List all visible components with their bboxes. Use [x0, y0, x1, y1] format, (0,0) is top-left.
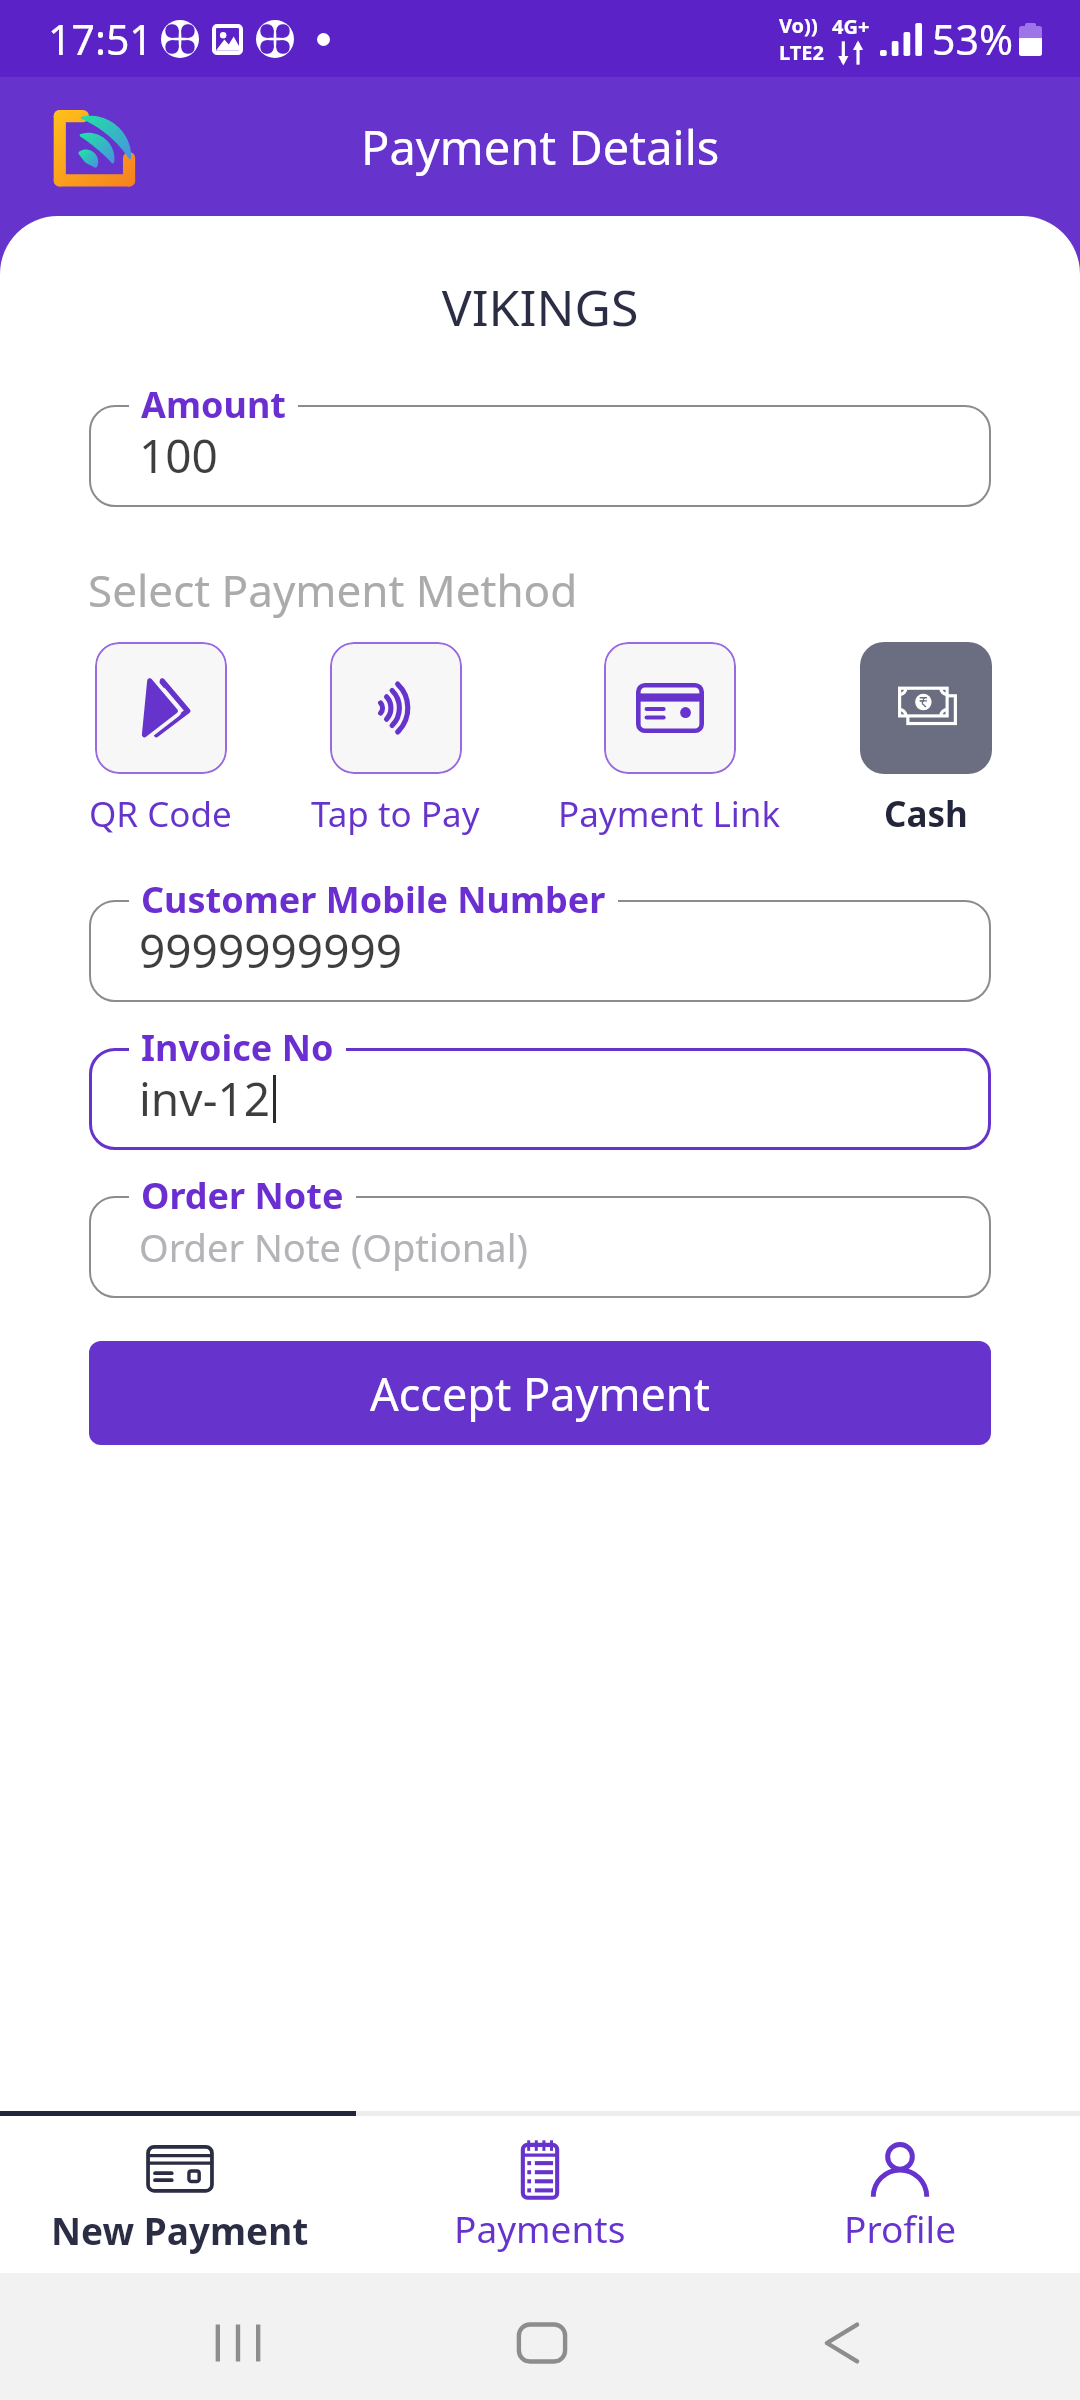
- staticText: Select Payment Method: [88, 560, 578, 620]
- other: App logo: [52, 105, 136, 189]
- staticText: 4G+: [832, 13, 870, 40]
- staticText: 53%: [932, 11, 1013, 67]
- staticText: Invoice No: [141, 1023, 334, 1072]
- button[interactable]: [89, 1196, 991, 1298]
- staticText: 100: [139, 424, 218, 487]
- staticText: Tap to Pay: [311, 790, 480, 838]
- staticText: Profile: [844, 2203, 956, 2253]
- staticText: Cash: [884, 790, 968, 838]
- staticText: inv-12: [139, 1067, 271, 1130]
- staticText: Customer Mobile Number: [141, 875, 606, 924]
- staticText: Amount: [141, 380, 286, 429]
- button[interactable]: Tap to Pay: [311, 642, 480, 838]
- button[interactable]: Back: [800, 2301, 884, 2385]
- staticText: LTE2: [779, 39, 824, 66]
- staticText: 17:51: [48, 11, 153, 67]
- staticText: Vo)): [779, 12, 818, 39]
- button[interactable]: [89, 405, 991, 507]
- staticText: 9999999999: [139, 919, 403, 982]
- button[interactable]: Payments: [360, 2116, 720, 2273]
- staticText: New Payment: [51, 2205, 309, 2255]
- button[interactable]: New Payment: [0, 2116, 360, 2273]
- staticText: Order Note: [141, 1171, 344, 1220]
- staticText: Order Note (Optional): [139, 1221, 528, 1273]
- staticText: Payment Details: [361, 115, 720, 179]
- staticText: Accept Payment: [370, 1363, 710, 1424]
- button[interactable]: Accept Payment: [89, 1341, 991, 1445]
- staticText: VIKINGS: [0, 273, 1080, 341]
- button[interactable]: [89, 1048, 991, 1150]
- staticText: QR Code: [89, 790, 232, 838]
- button[interactable]: Payment Link: [558, 642, 781, 838]
- button[interactable]: Profile: [720, 2116, 1080, 2273]
- button[interactable]: QR Code: [89, 642, 232, 838]
- button[interactable]: Cash: [860, 642, 992, 838]
- button[interactable]: Recents: [196, 2301, 280, 2385]
- button[interactable]: Home: [500, 2301, 584, 2385]
- button[interactable]: [89, 900, 991, 1002]
- staticText: Payment Link: [558, 790, 781, 838]
- staticText: Payments: [454, 2203, 626, 2253]
